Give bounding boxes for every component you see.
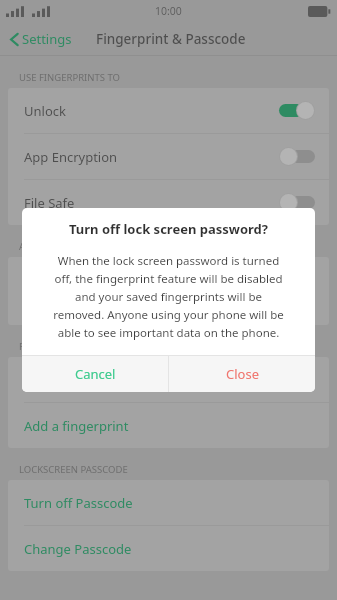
- button[interactable]: Turn off Passcode: [8, 480, 329, 525]
- button[interactable]: File Safe: [8, 180, 329, 225]
- staticText: LOCKSCREEN PASSCODE: [19, 463, 128, 476]
- staticText: ADD FINGERPRINT: [19, 240, 103, 253]
- staticText: Add a fingerprint: [24, 417, 129, 435]
- staticText: Turn off lock screen password?: [22, 220, 315, 238]
- staticText: removed. Anyone using your phone will be: [36, 307, 301, 323]
- staticText: File Safe: [24, 194, 279, 212]
- staticText: off, the fingerprint feature will be dis…: [36, 271, 301, 287]
- button[interactable]: Finger 1: [8, 357, 329, 402]
- staticText: 10:00: [155, 4, 182, 18]
- button[interactable]: Close: [169, 356, 315, 392]
- staticText: USE FINGERPRINTS TO: [19, 71, 120, 84]
- button[interactable]: Cancel: [22, 356, 168, 392]
- staticText: Fingerprint & Passcode: [96, 30, 246, 48]
- staticText: FINGERPRINTS: [19, 340, 86, 353]
- staticText: Change Passcode: [24, 540, 132, 558]
- staticText: Unlock: [24, 102, 279, 120]
- staticText: Turn off Passcode: [24, 494, 133, 512]
- staticText: When the lock screen password is turned: [36, 253, 301, 269]
- staticText: Settings: [22, 30, 72, 48]
- staticText: able to see important data on the phone.: [36, 325, 301, 341]
- staticText: A fingerprint may be less secure than a …: [22, 268, 239, 282]
- button[interactable]: Unlock: [8, 88, 329, 133]
- button[interactable]: Add a fingerprint: [8, 403, 329, 448]
- button[interactable]: Settings: [5, 26, 77, 52]
- staticText: pattern or PIN. Register your fingerprin…: [22, 284, 223, 298]
- staticText: Close: [226, 365, 259, 383]
- button[interactable]: Change Passcode: [8, 526, 329, 571]
- staticText: and your saved fingerprints will be: [36, 289, 301, 305]
- button[interactable]: App Encryption: [8, 134, 329, 179]
- staticText: Cancel: [75, 365, 116, 383]
- staticText: Finger 1: [24, 371, 308, 389]
- staticText: App Encryption: [24, 148, 279, 166]
- staticText: Settings.: [22, 300, 63, 314]
